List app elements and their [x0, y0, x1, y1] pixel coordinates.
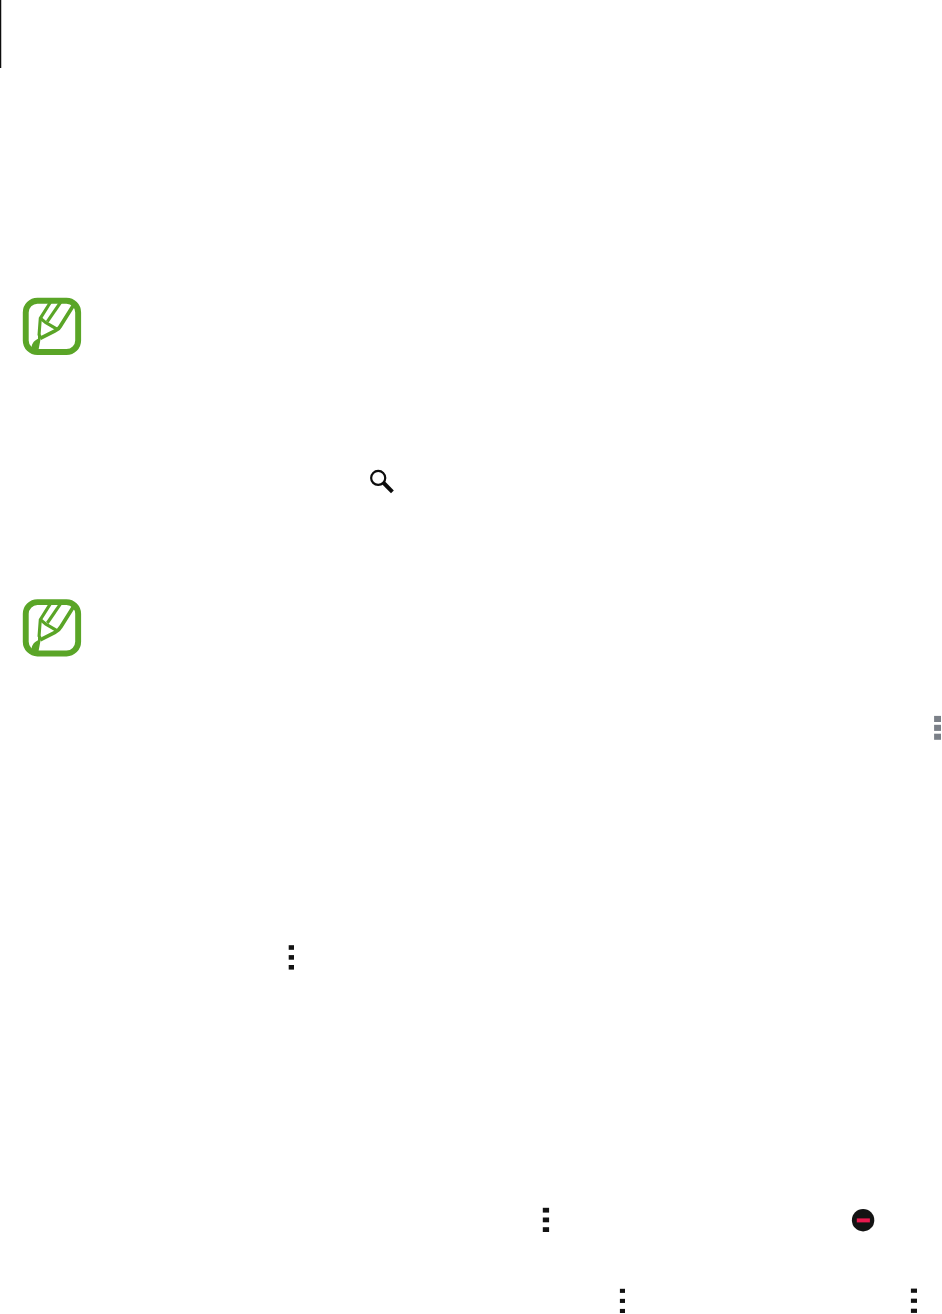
button[interactable]: More options — [928, 710, 942, 746]
button[interactable]: More options — [537, 1202, 554, 1238]
button[interactable]: More options — [905, 1283, 922, 1314]
button[interactable]: S Note — [17, 292, 87, 361]
button[interactable]: Search — [362, 462, 398, 498]
button[interactable]: S Note — [17, 593, 87, 662]
button[interactable]: Remove — [850, 1207, 877, 1234]
button[interactable]: More options — [614, 1283, 630, 1314]
button[interactable]: More options — [283, 940, 299, 976]
